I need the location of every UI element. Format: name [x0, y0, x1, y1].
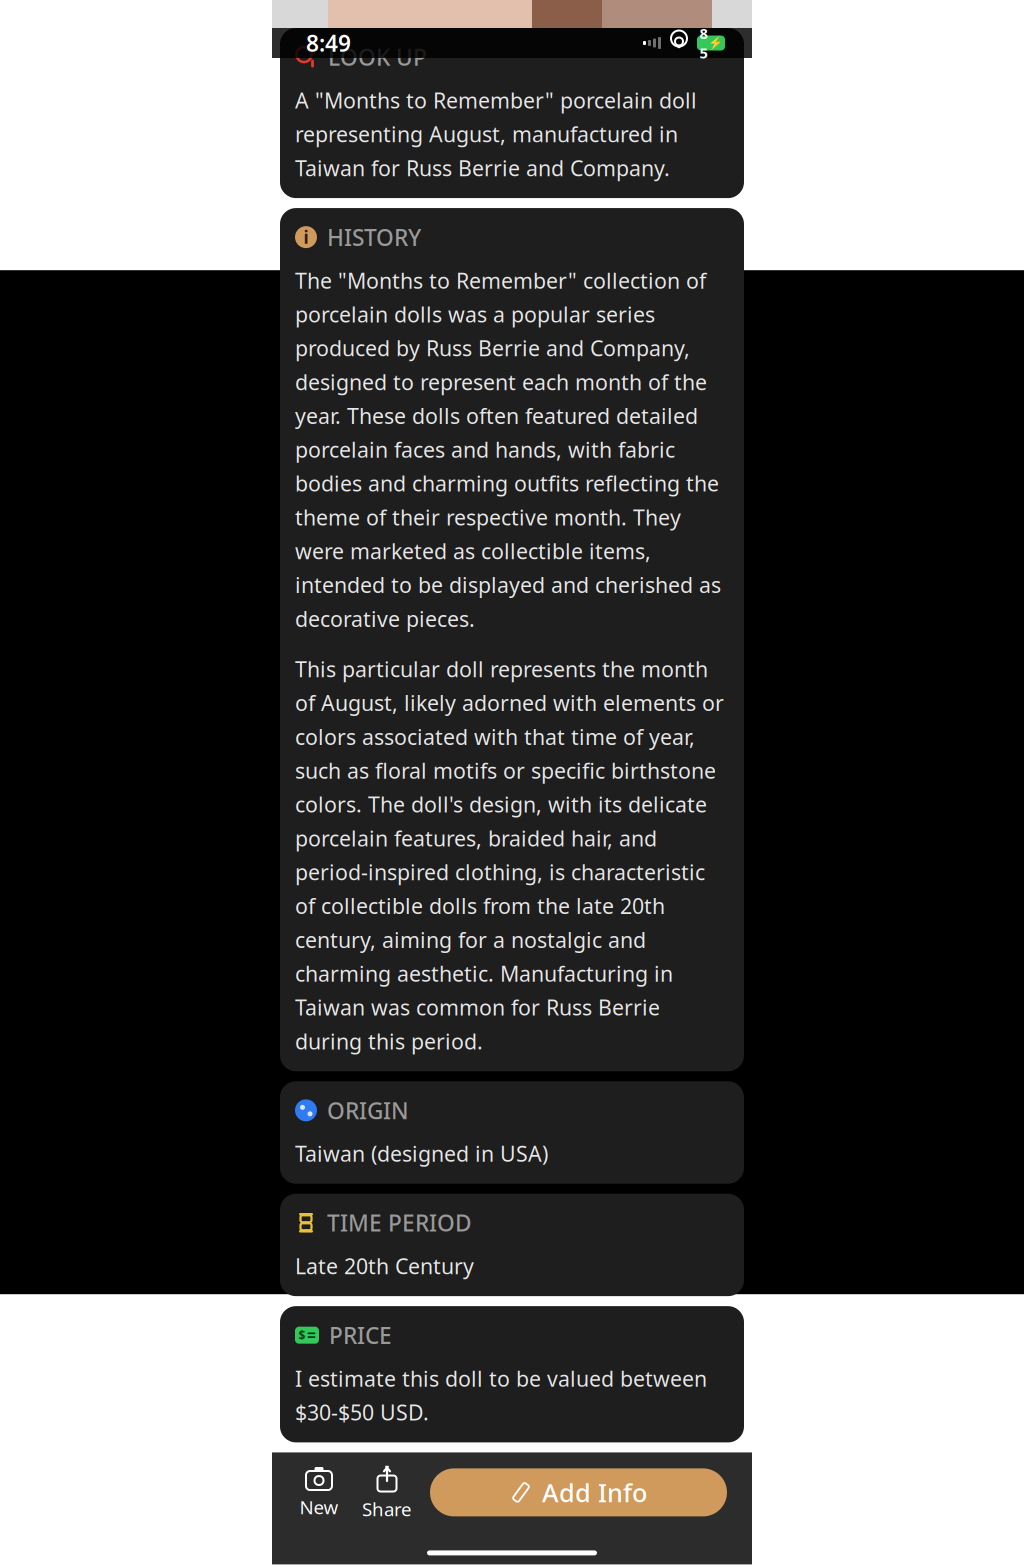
- staticText: 8:49: [306, 28, 351, 58]
- staticText: ⚡: [707, 36, 722, 50]
- staticText: Taiwan (designed in USA): [295, 1139, 548, 1168]
- button[interactable]: Share: [356, 1464, 418, 1520]
- staticText: LOOK UP: [328, 42, 427, 72]
- button[interactable]: Add Info: [430, 1468, 727, 1516]
- staticText: TIME PERIOD: [327, 1208, 472, 1238]
- button[interactable]: New: [288, 1464, 350, 1520]
- staticText: 85: [699, 23, 707, 62]
- staticText: i: [303, 226, 308, 249]
- staticText: A "Months to Remember" porcelain doll re…: [295, 86, 697, 182]
- staticText: I estimate this doll to be valued betwee…: [295, 1364, 707, 1426]
- staticText: Share: [362, 1496, 412, 1521]
- staticText: This particular doll represents the mont…: [295, 655, 724, 1055]
- staticText: New: [299, 1494, 338, 1519]
- staticText: Late 20th Century: [295, 1252, 474, 1280]
- staticText: Add Info: [542, 1476, 647, 1509]
- staticText: ORIGIN: [327, 1095, 409, 1125]
- staticText: PRICE: [329, 1320, 392, 1350]
- staticText: The "Months to Remember" collection of p…: [295, 266, 721, 633]
- staticText: $: [298, 1327, 305, 1343]
- staticText: HISTORY: [327, 222, 421, 252]
